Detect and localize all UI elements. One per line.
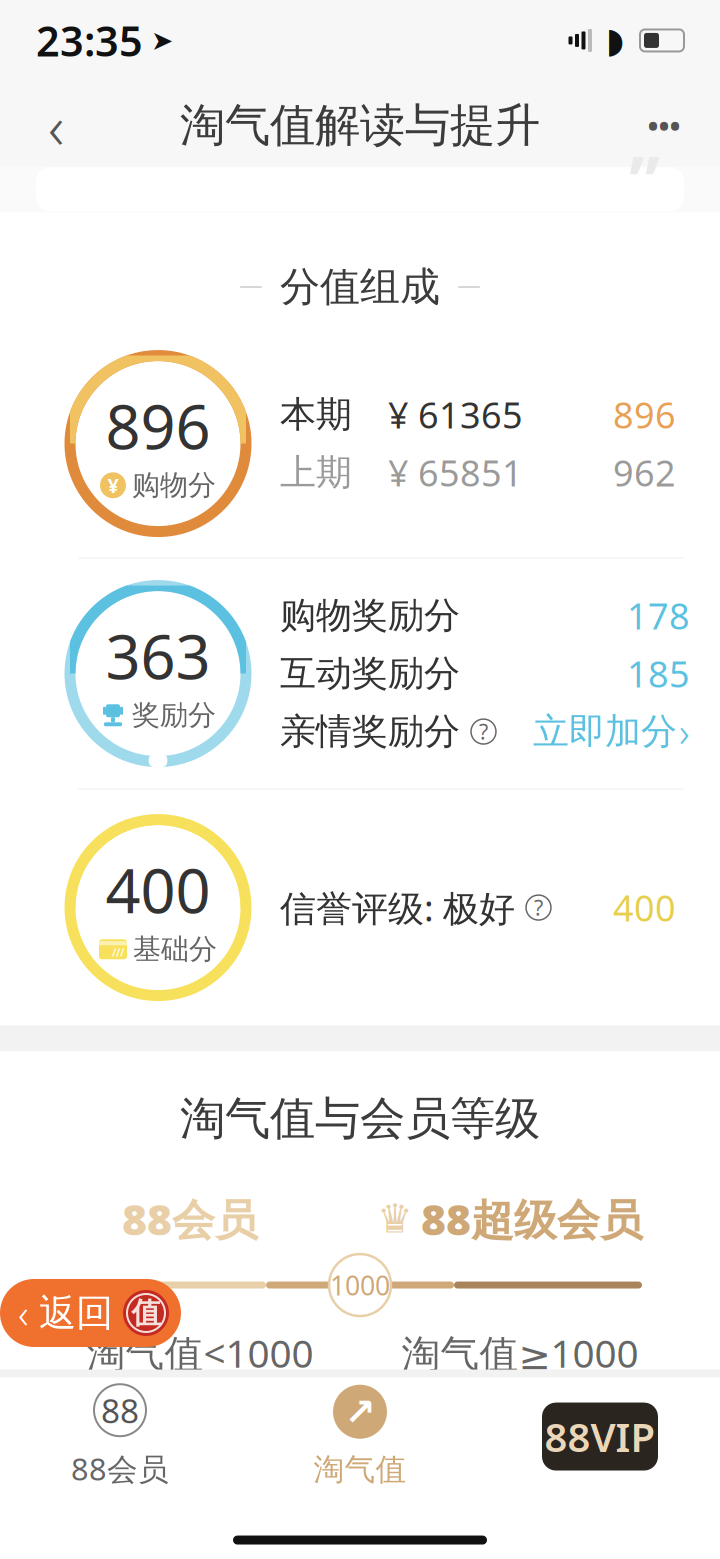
button[interactable]: Back xyxy=(18,87,94,163)
staticText: ¥ xyxy=(107,472,118,499)
staticText: ” xyxy=(629,134,660,226)
staticText: /// xyxy=(112,945,124,959)
staticText: 185 xyxy=(627,650,690,697)
staticText: 互动奖励分 xyxy=(280,651,460,696)
staticText: 88 xyxy=(101,1388,139,1432)
staticText: 淘气值解读与提升 xyxy=(180,98,540,153)
staticText: ••• xyxy=(647,106,680,145)
staticText: ‹ xyxy=(48,85,64,166)
staticText: 分值组成 xyxy=(280,262,440,311)
staticText: 88会员 xyxy=(122,1190,258,1247)
staticText: ◗ xyxy=(606,21,624,60)
staticText: ? xyxy=(534,893,543,922)
button[interactable]: 亲情奖励分 xyxy=(280,709,497,754)
staticText: 本期 xyxy=(280,392,352,437)
staticText: 1000 xyxy=(330,1267,390,1303)
staticText: 信誉评级: 极好 xyxy=(280,884,515,931)
staticText: ? xyxy=(479,717,488,746)
button[interactable]: 88 xyxy=(0,1378,240,1496)
staticText: › xyxy=(679,705,690,758)
button[interactable]: More xyxy=(626,87,702,163)
staticText: 淘气值 xyxy=(313,1451,406,1488)
staticText: 立即加分 xyxy=(533,709,677,754)
staticText: 896 xyxy=(613,391,676,438)
staticText: 值 xyxy=(131,1295,160,1331)
staticText: ¥ 61365 xyxy=(388,391,523,438)
button[interactable]: ‹ xyxy=(0,1279,181,1347)
staticText: 返回 xyxy=(39,1290,113,1336)
staticText: 奖励分 xyxy=(132,698,216,732)
staticText: 23:35 xyxy=(36,13,143,68)
staticText: ♛ xyxy=(377,1196,413,1241)
staticText: 88超级会员 xyxy=(421,1190,643,1247)
staticText: ‹ xyxy=(18,1286,29,1339)
staticText: 购物奖励分 xyxy=(280,593,460,638)
staticText: 亲情奖励分 xyxy=(280,709,460,754)
staticText: 400 xyxy=(105,849,210,930)
staticText: 178 xyxy=(627,592,690,639)
staticText: 88VIP xyxy=(544,1410,655,1463)
staticText: 淘气值<1000 xyxy=(86,1327,313,1378)
staticText: 962 xyxy=(613,449,676,496)
button[interactable]: 信誉评级: 极好 xyxy=(280,884,552,931)
staticText: 上期 xyxy=(280,450,352,495)
button[interactable]: 88VIP xyxy=(480,1378,720,1496)
staticText: 基础分 xyxy=(133,932,217,966)
staticText: 896 xyxy=(105,385,210,466)
staticText: 淘气值与会员等级 xyxy=(180,1091,540,1146)
staticText: 淘气值≥1000 xyxy=(401,1327,638,1378)
staticText: 363 xyxy=(105,615,210,696)
staticText: ¥ 65851 xyxy=(388,449,523,496)
button[interactable]: 立即加分 xyxy=(533,705,690,758)
staticText: ↗ xyxy=(344,1390,375,1433)
staticText: 400 xyxy=(613,884,676,931)
staticText: 购物分 xyxy=(132,468,216,502)
staticText: ➤ xyxy=(151,25,173,56)
staticText: 88会员 xyxy=(71,1448,169,1489)
button[interactable]: ↗ xyxy=(240,1378,480,1496)
